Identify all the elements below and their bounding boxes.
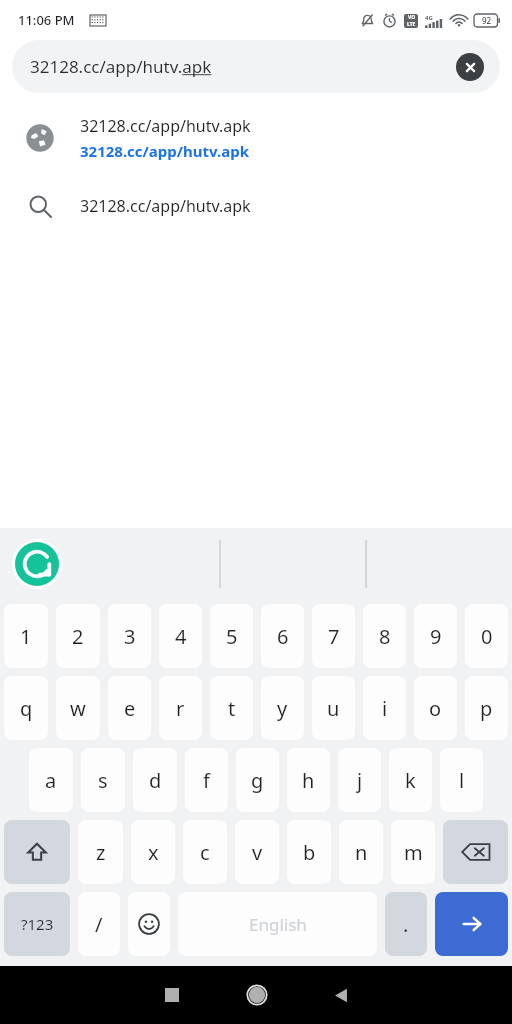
button[interactable]: 7 bbox=[312, 604, 355, 668]
button[interactable]: o bbox=[414, 676, 457, 740]
button[interactable]: 6 bbox=[261, 604, 304, 668]
staticText: j bbox=[357, 767, 363, 794]
staticText: . bbox=[403, 911, 409, 938]
button[interactable]: Back bbox=[299, 966, 384, 1024]
button[interactable]: r bbox=[159, 676, 202, 740]
button[interactable]: 5 bbox=[210, 604, 253, 668]
button[interactable]: Clear bbox=[456, 53, 484, 81]
button[interactable]: d bbox=[133, 748, 177, 812]
staticText: q bbox=[20, 695, 33, 722]
button[interactable]: s bbox=[81, 748, 125, 812]
staticText: z bbox=[96, 839, 106, 866]
staticText: 92 bbox=[482, 15, 492, 26]
staticText: 6 bbox=[277, 623, 289, 650]
staticText: 4 bbox=[175, 623, 187, 650]
button[interactable]: Backspace bbox=[443, 820, 508, 884]
staticText: k bbox=[405, 767, 416, 794]
button[interactable]: w bbox=[56, 676, 100, 740]
staticText: a bbox=[45, 767, 57, 794]
staticText: 32128.cc/app/hutv.apk bbox=[80, 195, 251, 217]
button[interactable]: e bbox=[108, 676, 151, 740]
staticText: 2 bbox=[72, 623, 84, 650]
staticText: 0 bbox=[481, 623, 493, 650]
button[interactable]: Recents bbox=[129, 966, 214, 1024]
button[interactable]: k bbox=[389, 748, 432, 812]
button[interactable]: z bbox=[78, 820, 123, 884]
button[interactable]: 32128.cc/app/hutv.apk bbox=[0, 173, 512, 239]
button[interactable]: 0 bbox=[465, 604, 508, 668]
staticText: i bbox=[382, 695, 388, 722]
staticText: LTE bbox=[407, 21, 416, 28]
button[interactable]: l bbox=[440, 748, 483, 812]
staticText: 1 bbox=[20, 623, 32, 650]
staticText: 32128.cc/app/hutv.apk bbox=[30, 55, 212, 78]
button[interactable]: g bbox=[236, 748, 279, 812]
staticText: m bbox=[404, 839, 423, 866]
button[interactable]: 1 bbox=[4, 604, 48, 668]
button[interactable]: p bbox=[465, 676, 508, 740]
staticText: 8 bbox=[379, 623, 391, 650]
button[interactable]: 8 bbox=[363, 604, 406, 668]
staticText: h bbox=[302, 767, 315, 794]
button[interactable]: h bbox=[287, 748, 330, 812]
staticText: p bbox=[480, 695, 493, 722]
button[interactable]: ?123 bbox=[4, 892, 70, 956]
staticText: 3 bbox=[124, 623, 136, 650]
staticText: d bbox=[149, 767, 162, 794]
staticText: o bbox=[429, 695, 442, 722]
button[interactable]: f bbox=[185, 748, 228, 812]
button[interactable]: i bbox=[363, 676, 406, 740]
staticText: f bbox=[203, 767, 210, 794]
button[interactable]: Enter bbox=[435, 892, 508, 956]
button[interactable]: 9 bbox=[414, 604, 457, 668]
staticText: n bbox=[355, 839, 368, 866]
staticText: English bbox=[249, 913, 307, 936]
button[interactable]: u bbox=[312, 676, 355, 740]
staticText: ?123 bbox=[21, 914, 54, 934]
staticText: v bbox=[252, 839, 263, 866]
staticText: s bbox=[98, 767, 108, 794]
button[interactable]: Shift bbox=[4, 820, 70, 884]
button[interactable]: 32128.cc/app/hutv.apk bbox=[12, 40, 500, 93]
staticText: 32128.cc/app/hutv.apk bbox=[80, 115, 251, 137]
button[interactable]: English bbox=[178, 892, 377, 956]
button[interactable]: q bbox=[4, 676, 48, 740]
button[interactable]: Home bbox=[214, 966, 299, 1024]
button[interactable]: n bbox=[339, 820, 383, 884]
button[interactable]: 32128.cc/app/hutv.apk bbox=[0, 103, 512, 173]
staticText: y bbox=[277, 695, 288, 722]
staticText: w bbox=[70, 695, 86, 722]
staticText: 32128.cc/app/hutv.apk bbox=[80, 141, 249, 161]
staticText: 7 bbox=[328, 623, 340, 650]
button[interactable]: v bbox=[235, 820, 279, 884]
button[interactable]: x bbox=[131, 820, 175, 884]
button[interactable]: y bbox=[261, 676, 304, 740]
staticText: VO bbox=[408, 14, 416, 21]
button[interactable]: j bbox=[338, 748, 381, 812]
button[interactable]: b bbox=[287, 820, 331, 884]
staticText: g bbox=[251, 767, 264, 794]
staticText: t bbox=[228, 695, 236, 722]
button[interactable]: a bbox=[29, 748, 73, 812]
button[interactable]: 4 bbox=[159, 604, 202, 668]
staticText: l bbox=[459, 767, 465, 794]
staticText: c bbox=[200, 839, 210, 866]
staticText: u bbox=[327, 695, 340, 722]
staticText: x bbox=[148, 839, 159, 866]
button[interactable]: c bbox=[183, 820, 227, 884]
button[interactable]: . bbox=[385, 892, 427, 956]
staticText: e bbox=[124, 695, 136, 722]
staticText: 4G bbox=[425, 14, 433, 22]
staticText: / bbox=[95, 911, 103, 938]
staticText: b bbox=[303, 839, 316, 866]
button[interactable]: m bbox=[391, 820, 435, 884]
button[interactable]: / bbox=[78, 892, 120, 956]
staticText: 5 bbox=[226, 623, 238, 650]
button[interactable]: Grammarly bbox=[12, 539, 62, 589]
staticText: 9 bbox=[430, 623, 442, 650]
button[interactable]: 3 bbox=[108, 604, 151, 668]
staticText: 11:06 PM bbox=[18, 11, 75, 29]
button[interactable]: 2 bbox=[56, 604, 100, 668]
button[interactable]: Emoji bbox=[128, 892, 170, 956]
button[interactable]: t bbox=[210, 676, 253, 740]
